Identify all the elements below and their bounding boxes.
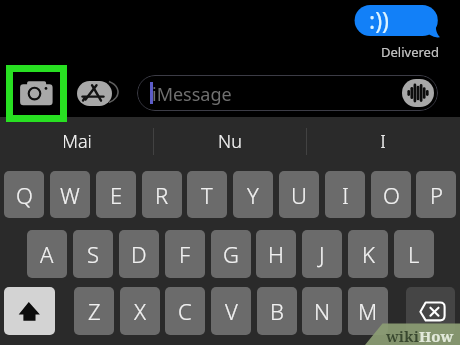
button[interactable]: T <box>187 171 227 218</box>
button[interactable]: Camera <box>6 65 67 122</box>
staticText: M <box>358 296 378 326</box>
staticText: :)) <box>369 4 389 35</box>
button[interactable]: B <box>257 287 297 335</box>
staticText: T <box>201 180 213 210</box>
staticText: L <box>408 239 420 269</box>
staticText: I <box>380 129 386 154</box>
staticText: wiki <box>386 326 419 345</box>
button[interactable]: N <box>302 287 342 335</box>
button[interactable]: F <box>165 230 205 278</box>
staticText: Mai <box>62 129 92 154</box>
button[interactable]: Z <box>74 287 114 335</box>
button[interactable]: A <box>27 230 67 278</box>
staticText: W <box>60 180 80 210</box>
staticText: N <box>314 296 331 326</box>
button[interactable]: E <box>96 171 136 218</box>
button[interactable]: W <box>50 171 90 218</box>
button[interactable]: R <box>142 171 182 218</box>
button[interactable]: Audio message <box>402 79 434 107</box>
button[interactable]: Q <box>4 171 44 218</box>
button[interactable]: L <box>394 230 434 278</box>
staticText: U <box>291 180 307 210</box>
staticText: D <box>131 239 147 269</box>
button[interactable]: I <box>325 171 365 218</box>
staticText: E <box>110 180 123 210</box>
staticText: Q <box>16 180 33 210</box>
staticText: R <box>155 180 169 210</box>
button[interactable]: I <box>306 117 460 165</box>
button[interactable]: Y <box>233 171 273 218</box>
button[interactable]: P <box>416 171 456 218</box>
staticText: I <box>342 180 349 210</box>
button[interactable]: App Store <box>77 81 112 106</box>
button[interactable]: K <box>348 230 388 278</box>
button[interactable]: G <box>211 230 251 278</box>
button[interactable]: H <box>256 230 296 278</box>
button[interactable]: J <box>302 230 342 278</box>
staticText: iMessage <box>152 82 232 107</box>
staticText: How <box>419 326 454 345</box>
button[interactable]: iMessage <box>137 75 438 111</box>
staticText: A <box>40 239 54 269</box>
staticText: O <box>383 180 400 210</box>
staticText: K <box>362 239 375 269</box>
staticText: F <box>179 239 191 269</box>
staticText: J <box>319 239 325 269</box>
staticText: S <box>87 239 100 269</box>
button[interactable]: Shift <box>4 287 55 335</box>
staticText: B <box>270 296 284 326</box>
staticText: P <box>430 180 443 210</box>
staticText: C <box>178 296 192 326</box>
button[interactable]: U <box>279 171 319 218</box>
button[interactable]: M <box>348 287 388 335</box>
staticText: V <box>225 296 238 326</box>
button[interactable]: Mai <box>0 117 153 165</box>
button[interactable]: Nu <box>153 117 306 165</box>
button[interactable]: D <box>119 230 159 278</box>
staticText: Y <box>247 180 259 210</box>
button[interactable]: O <box>371 171 411 218</box>
button[interactable]: V <box>211 287 251 335</box>
button[interactable]: S <box>73 230 113 278</box>
staticText: X <box>134 296 147 326</box>
staticText: H <box>268 239 284 269</box>
staticText: Delivered <box>381 43 439 61</box>
button[interactable]: Backspace <box>406 287 455 335</box>
staticText: Z <box>88 296 101 326</box>
button[interactable]: C <box>165 287 205 335</box>
staticText: G <box>223 239 239 269</box>
button[interactable]: X <box>120 287 160 335</box>
staticText: Nu <box>218 129 242 154</box>
